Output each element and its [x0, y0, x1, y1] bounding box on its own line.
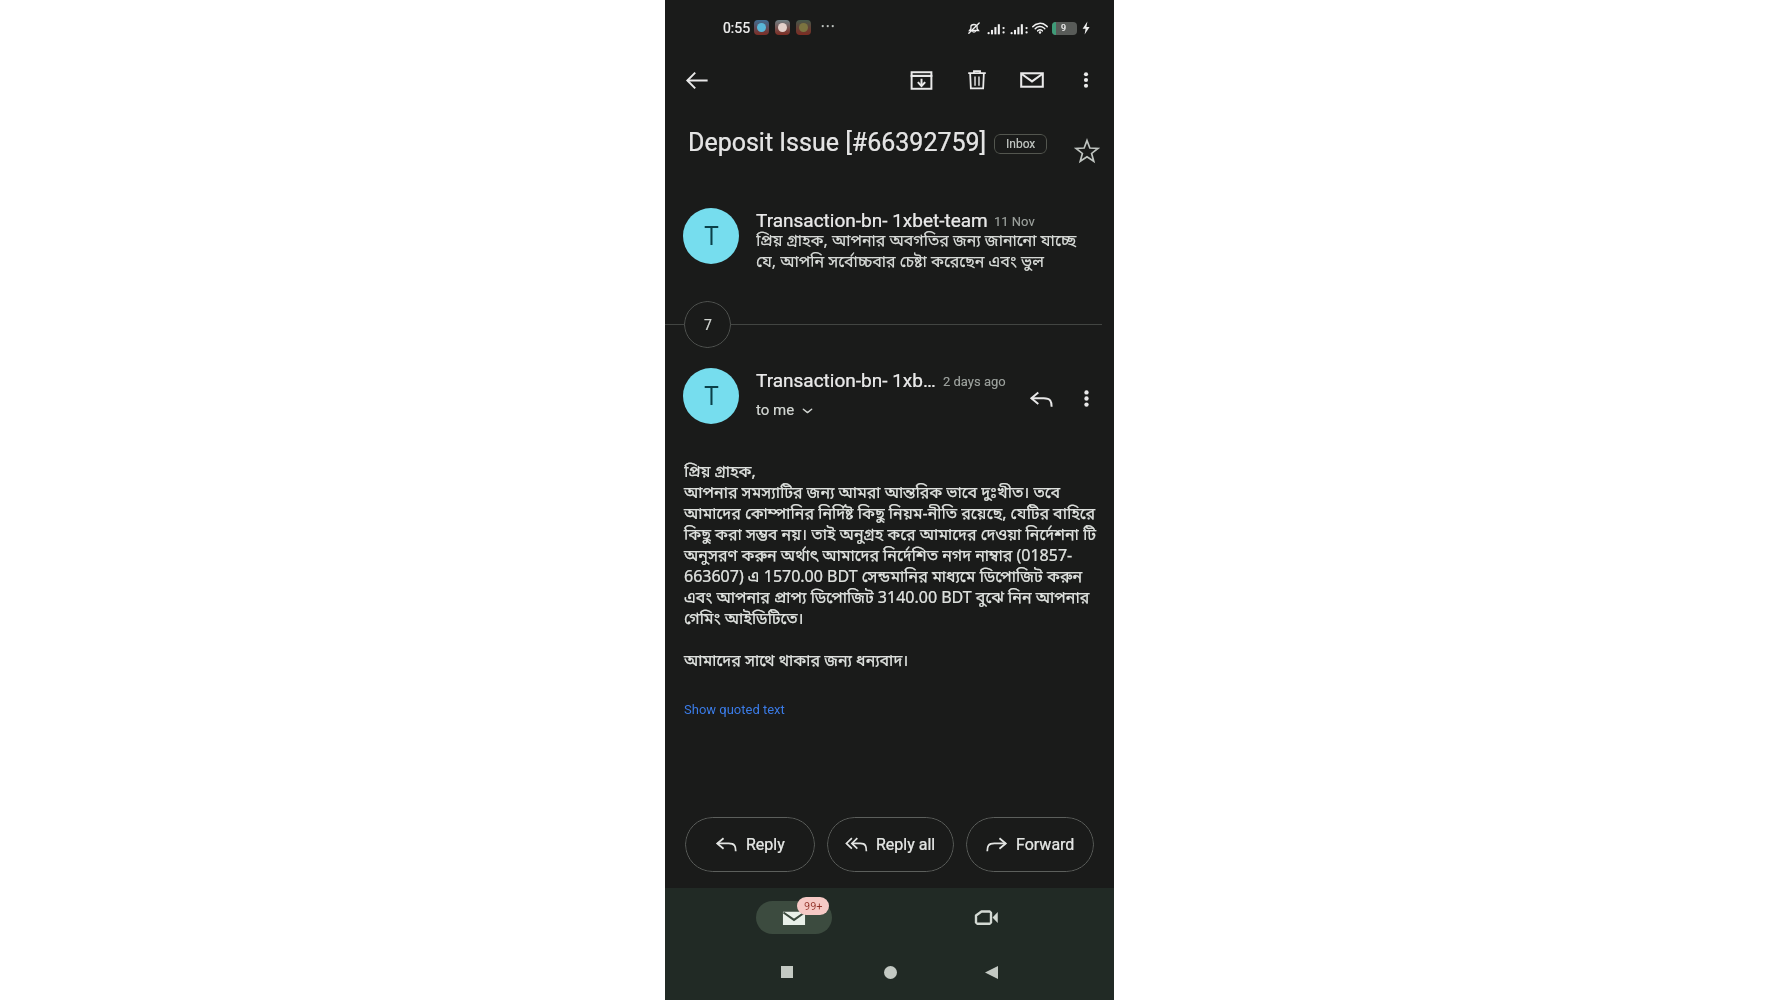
staticText: প্রিয় গ্রাহক, আপনার সমস্যাটির জন্য আমরা… — [684, 462, 1096, 672]
button[interactable]: to me — [756, 401, 814, 419]
staticText: Transaction-bn- 1xb… — [756, 369, 936, 391]
staticText: Reply all — [876, 835, 936, 854]
staticText: T — [704, 222, 719, 251]
staticText: Deposit Issue [#66392759] — [688, 128, 987, 157]
staticText: প্রিয় গ্রাহক, আপনার অবগতির জন্য জানানো … — [756, 231, 1092, 273]
staticText: ⋯ — [820, 17, 835, 34]
button[interactable]: Reply all — [827, 817, 954, 872]
button[interactable]: Mail — [756, 901, 832, 934]
staticText: 11 Nov — [994, 214, 1035, 229]
button[interactable]: Forward — [966, 817, 1094, 872]
button[interactable]: Star — [1066, 130, 1108, 172]
button[interactable]: Meet — [948, 901, 1024, 934]
button[interactable]: Home — [871, 953, 909, 991]
button[interactable]: Reply — [685, 817, 815, 872]
button[interactable]: Back — [676, 59, 718, 101]
button[interactable]: 7 — [684, 301, 731, 348]
button[interactable]: Reply — [1021, 379, 1061, 419]
button[interactable]: Back — [972, 953, 1010, 991]
button[interactable]: Archive — [900, 59, 942, 101]
button[interactable]: Delete — [956, 59, 998, 101]
staticText: T — [704, 382, 719, 411]
staticText: to me — [756, 401, 795, 419]
staticText: Forward — [1016, 835, 1075, 854]
button[interactable]: Mark as unread — [1011, 59, 1053, 101]
staticText: 2 days ago — [943, 374, 1006, 389]
button[interactable]: Show quoted text — [684, 698, 785, 721]
staticText: Transaction-bn- 1xbet-team — [756, 209, 988, 231]
staticText: 99+ — [804, 900, 823, 913]
staticText: 0:55 — [723, 20, 750, 36]
staticText: 9 — [1061, 23, 1067, 34]
button[interactable]: T — [665, 209, 1114, 273]
button[interactable]: More options — [1065, 59, 1107, 101]
staticText: Inbox — [1006, 137, 1036, 151]
button[interactable]: Inbox — [994, 134, 1047, 154]
staticText: Show quoted text — [684, 702, 785, 717]
button[interactable]: More options — [1067, 379, 1105, 417]
staticText: 7 — [704, 317, 712, 333]
staticText: Reply — [746, 835, 785, 854]
button[interactable]: Recents — [768, 953, 806, 991]
